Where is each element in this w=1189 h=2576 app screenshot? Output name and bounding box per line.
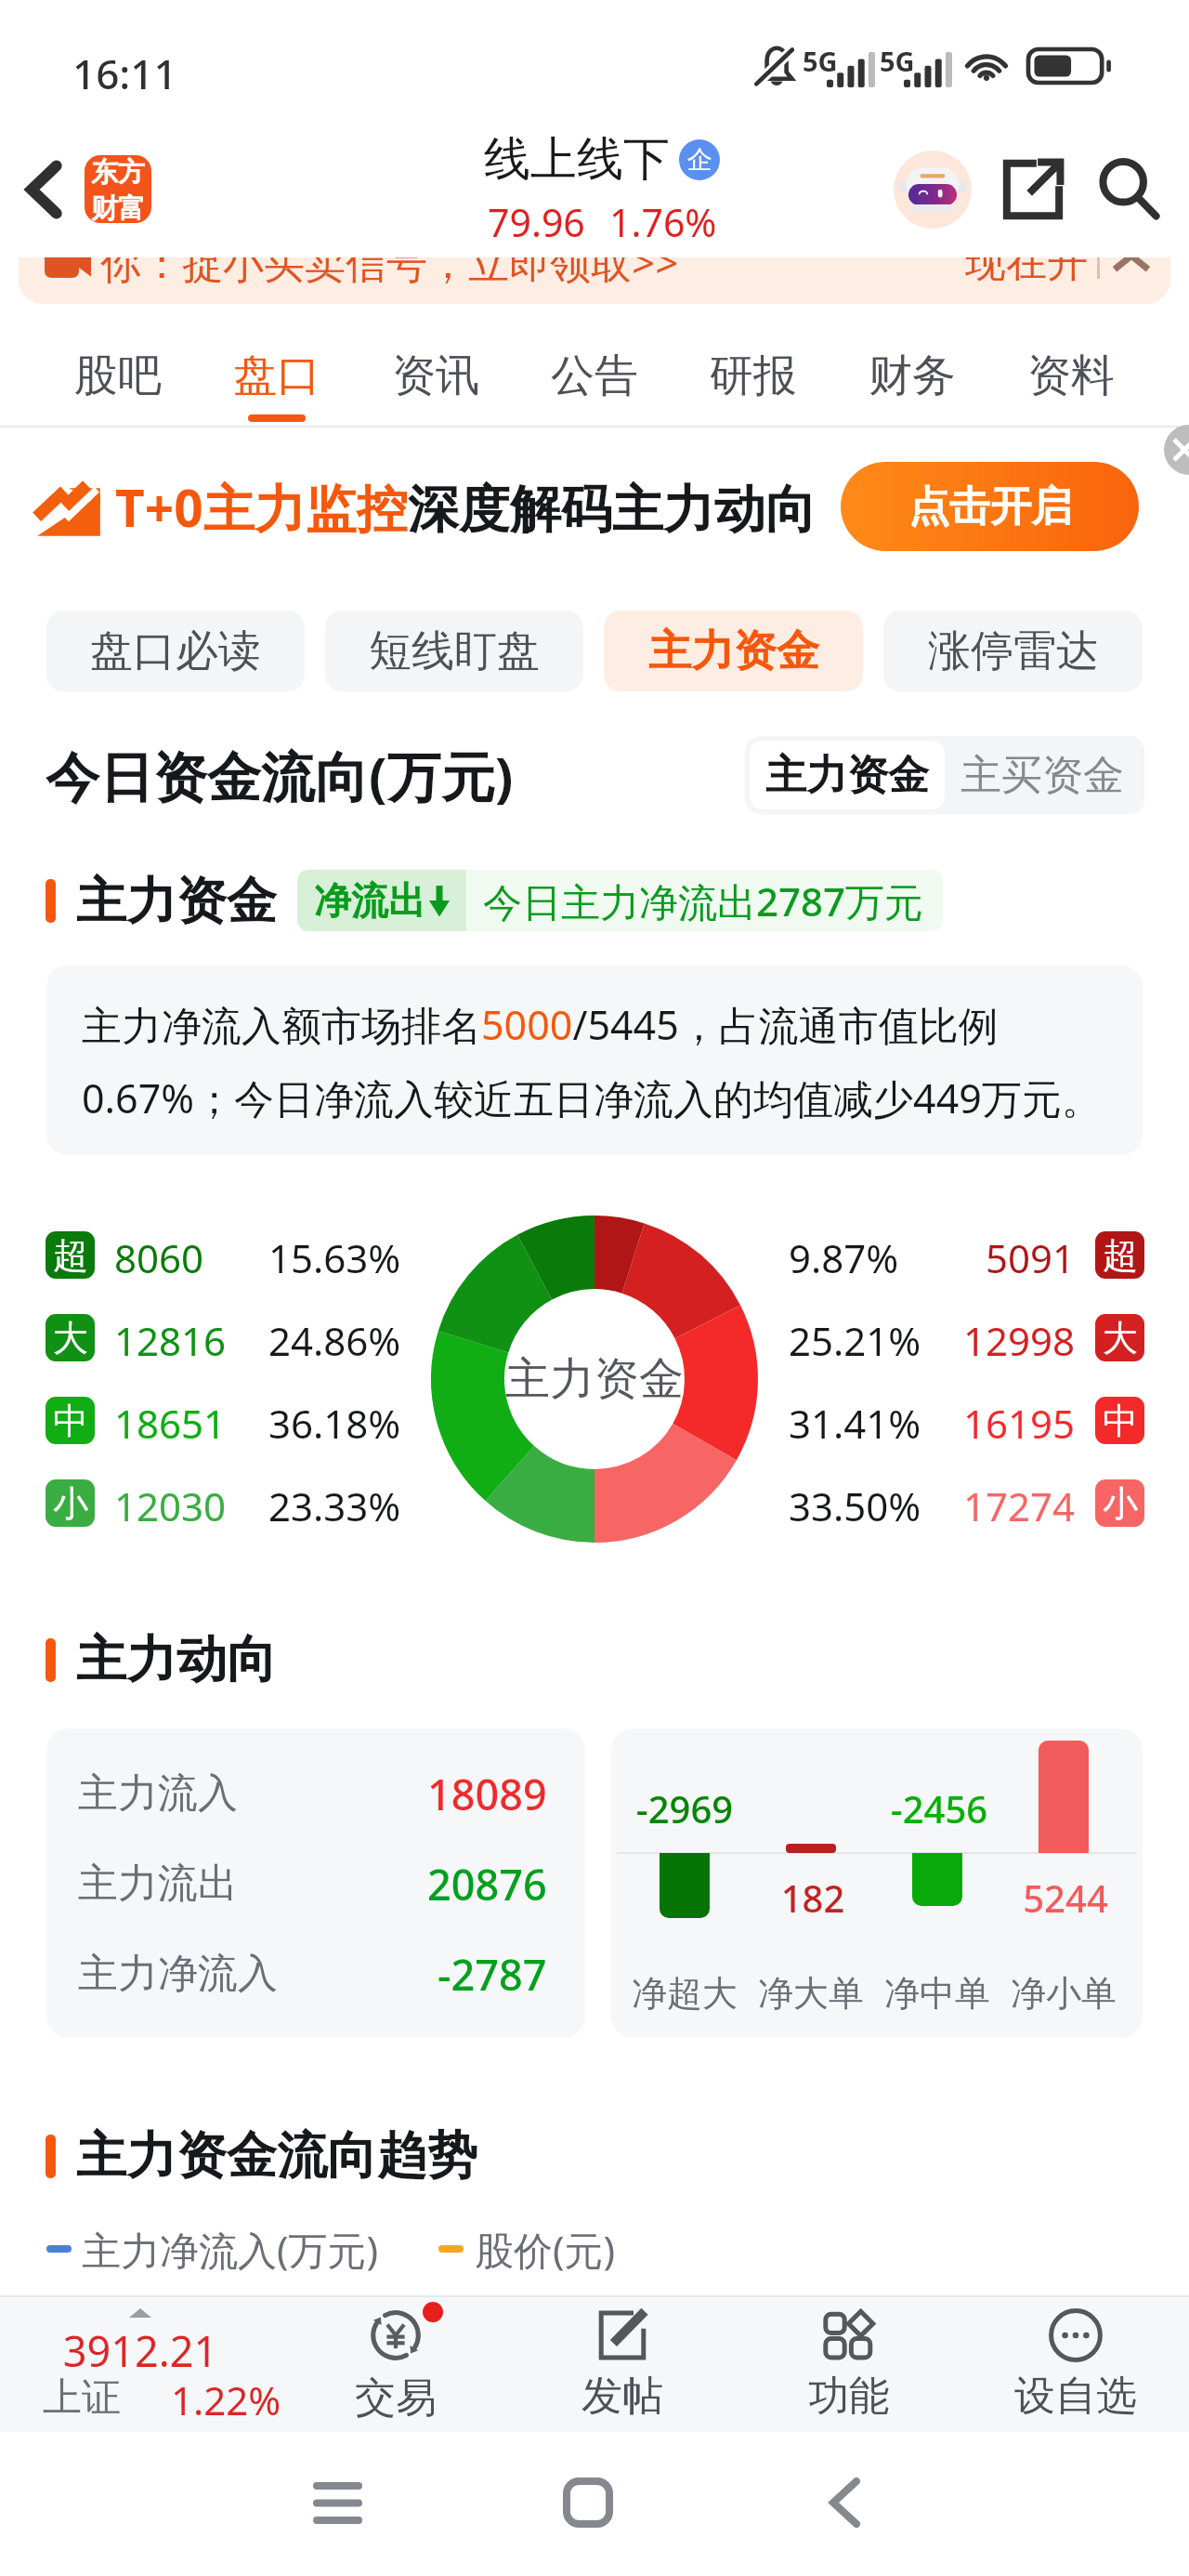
staticText: 主买资金 xyxy=(960,750,1124,801)
staticText: 涨停雷达 xyxy=(928,624,1099,678)
button[interactable]: AI助手 xyxy=(890,147,975,232)
staticText: 大 xyxy=(1103,1316,1138,1360)
button[interactable]: T+0主力监控深度解码主力动向 xyxy=(35,427,1139,585)
staticText: T+0主力监控深度解码主力动向 xyxy=(115,472,817,542)
staticText: 23.33% xyxy=(268,1479,401,1527)
staticText: 资讯 xyxy=(392,348,479,403)
staticText: 18089 xyxy=(427,1766,547,1822)
staticText: 主力资金流向趋势 xyxy=(76,2124,477,2188)
staticText: 182 xyxy=(738,1873,887,1923)
staticText: 5G xyxy=(880,43,915,79)
staticText: 79.96 xyxy=(488,196,585,248)
staticText: 主力动向 xyxy=(76,1628,277,1691)
staticText: 9.87% xyxy=(789,1231,899,1279)
button[interactable]: 股吧 xyxy=(39,307,197,426)
button[interactable]: 资讯 xyxy=(356,307,515,426)
staticText: 12998 xyxy=(963,1314,1076,1361)
button[interactable]: Close xyxy=(1164,425,1189,475)
staticText: 12816 xyxy=(114,1314,227,1361)
button[interactable]: 东方财富 xyxy=(85,155,151,223)
staticText: 33.50% xyxy=(789,1479,921,1527)
button[interactable]: 公告 xyxy=(515,307,673,426)
staticText: 18651 xyxy=(114,1397,227,1444)
button[interactable]: 财务 xyxy=(832,307,991,426)
staticText: 小 xyxy=(1103,1481,1138,1526)
button[interactable]: Share xyxy=(990,147,1076,232)
button[interactable]: 盘口必读 xyxy=(46,611,305,691)
button[interactable]: 3912.21 xyxy=(0,2297,282,2432)
staticText: 15.63% xyxy=(268,1231,401,1279)
staticText: 主力净流入 xyxy=(78,1949,278,1999)
staticText: 净超大 xyxy=(611,1971,759,2016)
staticText: 主力资金 xyxy=(76,870,277,931)
staticText: 研报 xyxy=(710,348,797,403)
staticText: 5091 xyxy=(986,1231,1076,1279)
staticText: 中 xyxy=(1103,1399,1138,1443)
button[interactable]: 资料 xyxy=(991,307,1150,426)
button[interactable]: Home xyxy=(537,2451,639,2554)
staticText: 净流出 xyxy=(314,877,425,924)
staticText: 超 xyxy=(1103,1233,1138,1278)
staticText: 5G xyxy=(803,43,838,79)
staticText: -2456 xyxy=(865,1783,1013,1833)
staticText: 17274 xyxy=(963,1479,1076,1527)
button[interactable]: Back xyxy=(0,121,86,257)
button[interactable]: 设自选 xyxy=(962,2297,1189,2432)
staticText: 财富 xyxy=(91,191,145,223)
staticText: 今日主力净流出2787万元 xyxy=(483,874,924,927)
button[interactable]: 发帖 xyxy=(509,2297,736,2432)
staticText: 主力资金 xyxy=(765,750,929,801)
button[interactable]: Recents xyxy=(286,2451,388,2554)
staticText: 现在开 xyxy=(965,257,1088,288)
button[interactable]: 涨停雷达 xyxy=(883,611,1143,691)
staticText: 短线盯盘 xyxy=(369,624,540,678)
staticText: 12030 xyxy=(114,1479,227,1527)
staticText: 16195 xyxy=(963,1397,1076,1444)
staticText: 净大单 xyxy=(737,1971,885,2016)
button[interactable]: 你：捉小买卖信号，立即领取>> xyxy=(19,257,1170,304)
staticText: 主力净流入额市场排名5000/5445，占流通市值比例0.67%；今日净流入较近… xyxy=(82,997,1107,1124)
staticText: 股吧 xyxy=(74,348,162,403)
staticText: 设自选 xyxy=(1014,2371,1137,2422)
staticText: 超 xyxy=(53,1233,88,1278)
button[interactable]: 主力资金 xyxy=(750,741,945,809)
button[interactable]: 主力资金 xyxy=(604,611,863,691)
staticText: 今日资金流向(万元) xyxy=(46,739,514,812)
staticText: -2787 xyxy=(438,1946,547,2003)
staticText: 企 xyxy=(687,144,712,176)
staticText: 盘口 xyxy=(233,348,320,403)
button[interactable]: Search xyxy=(1087,147,1172,232)
staticText: 线上线下 xyxy=(484,130,670,189)
staticText: 36.18% xyxy=(268,1397,401,1444)
staticText: 主力资金 xyxy=(648,624,819,678)
staticText: 净中单 xyxy=(863,1971,1012,2016)
staticText: 大 xyxy=(53,1316,88,1360)
staticText: 1.22% xyxy=(171,2373,281,2426)
staticText: 主力资金 xyxy=(505,1351,684,1407)
button[interactable]: 功能 xyxy=(736,2297,962,2432)
staticText: 25.21% xyxy=(789,1314,921,1361)
staticText: 8060 xyxy=(114,1231,204,1279)
button[interactable]: 点击开启 xyxy=(841,462,1139,551)
button[interactable]: 交易 xyxy=(282,2297,509,2432)
staticText: 股价(元) xyxy=(475,2223,616,2276)
button[interactable]: 短线盯盘 xyxy=(325,611,583,691)
staticText: 财务 xyxy=(869,348,956,403)
button[interactable]: 盘口 xyxy=(197,307,356,426)
staticText: 你：捉小买卖信号，立即领取>> xyxy=(100,257,679,290)
staticText: 小 xyxy=(53,1481,88,1526)
staticText: 主力流出 xyxy=(78,1859,238,1909)
staticText: 主力净流入(万元) xyxy=(82,2223,379,2276)
staticText: 24.86% xyxy=(268,1314,401,1361)
staticText: 盘口必读 xyxy=(90,624,261,678)
staticText: 3912.21 xyxy=(0,2322,281,2379)
button[interactable]: 研报 xyxy=(673,307,832,426)
staticText: 20876 xyxy=(427,1856,547,1912)
staticText: 发帖 xyxy=(581,2371,663,2422)
staticText: -2969 xyxy=(611,1783,759,1833)
staticText: 公告 xyxy=(551,348,638,403)
button[interactable]: 主买资金 xyxy=(945,741,1140,809)
staticText: 点击开启 xyxy=(908,481,1072,532)
staticText: 主力流入 xyxy=(78,1768,238,1819)
button[interactable]: Back xyxy=(793,2451,895,2554)
